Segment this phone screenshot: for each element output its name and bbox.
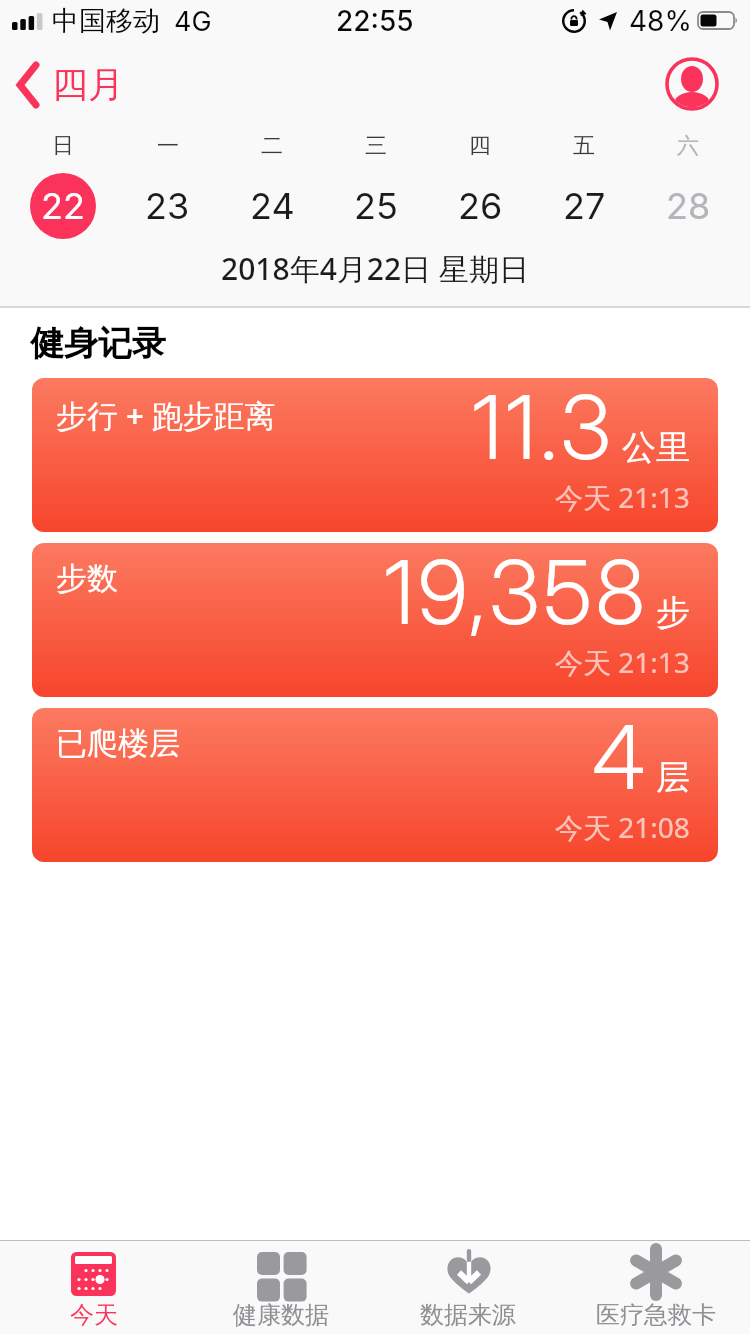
staticText: 数据来源 <box>420 1300 516 1330</box>
button[interactable]: 23 <box>145 184 190 228</box>
button[interactable]: 健康数据 <box>187 1241 374 1330</box>
staticText: 四月 <box>52 62 124 107</box>
staticText: 健康数据 <box>233 1300 329 1330</box>
staticText: 26 <box>458 184 503 228</box>
staticText: 步行 + 跑步距离 <box>56 394 276 436</box>
button[interactable]: 28 <box>666 184 711 228</box>
staticText: 步数 <box>56 559 118 598</box>
button[interactable]: 26 <box>458 184 503 228</box>
staticText: 2018年4月22日 星期日 <box>221 248 529 289</box>
staticText: 日 <box>52 132 74 160</box>
staticText: 公里 <box>622 426 690 469</box>
staticText: 19,358 <box>384 543 649 645</box>
staticText: 今天 <box>70 1300 118 1330</box>
button[interactable]: 22 <box>30 173 96 239</box>
staticText: 五 <box>573 132 595 160</box>
staticText: 六 <box>677 132 699 160</box>
button[interactable]: 24 <box>250 184 295 228</box>
staticText: 4 <box>592 708 649 810</box>
staticText: 中国移动 <box>52 4 160 38</box>
staticText: 二 <box>261 132 283 160</box>
staticText: 4G <box>174 5 212 38</box>
staticText: 22 <box>41 184 85 228</box>
staticText: 27 <box>563 184 606 228</box>
staticText: 23 <box>145 184 190 228</box>
button[interactable]: 25 <box>354 184 398 228</box>
button[interactable]: 步数 <box>32 543 718 697</box>
staticText: 今天 21:08 <box>555 808 690 846</box>
staticText: 层 <box>656 756 690 799</box>
staticText: 三 <box>365 132 387 160</box>
staticText: 健身记录 <box>30 322 166 365</box>
staticText: 今天 21:13 <box>555 643 690 681</box>
staticText: 25 <box>354 184 398 228</box>
staticText: 医疗急救卡 <box>596 1300 716 1330</box>
button[interactable]: 今天 <box>0 1241 187 1330</box>
button[interactable]: 数据来源 <box>374 1241 562 1330</box>
staticText: 11.3 <box>472 378 615 480</box>
staticText: 步 <box>656 591 690 634</box>
button[interactable]: 27 <box>563 184 606 228</box>
staticText: 22:55 <box>336 4 414 38</box>
staticText: 48% <box>629 4 692 38</box>
button[interactable] <box>666 58 718 110</box>
button[interactable]: 步行 + 跑步距离 <box>32 378 718 532</box>
button[interactable]: 已爬楼层 <box>32 708 718 862</box>
staticText: 24 <box>250 184 295 228</box>
staticText: 今天 21:13 <box>555 478 690 516</box>
button[interactable]: 医疗急救卡 <box>562 1241 750 1330</box>
staticText: 已爬楼层 <box>56 724 180 763</box>
staticText: 四 <box>469 132 491 160</box>
staticText: 28 <box>666 184 711 228</box>
button[interactable]: 四月 <box>16 62 124 107</box>
staticText: 一 <box>157 132 179 160</box>
